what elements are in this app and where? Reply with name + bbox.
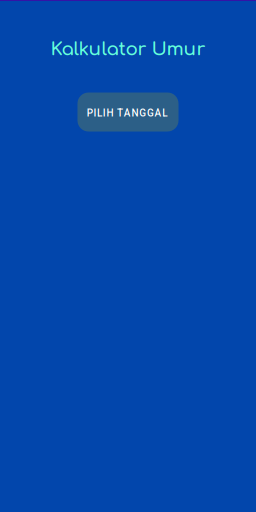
button[interactable]: PILIH TANGGAL (77, 92, 178, 131)
staticText: Kalkulator Umur (50, 39, 205, 59)
staticText: PILIH TANGGAL (87, 107, 167, 119)
